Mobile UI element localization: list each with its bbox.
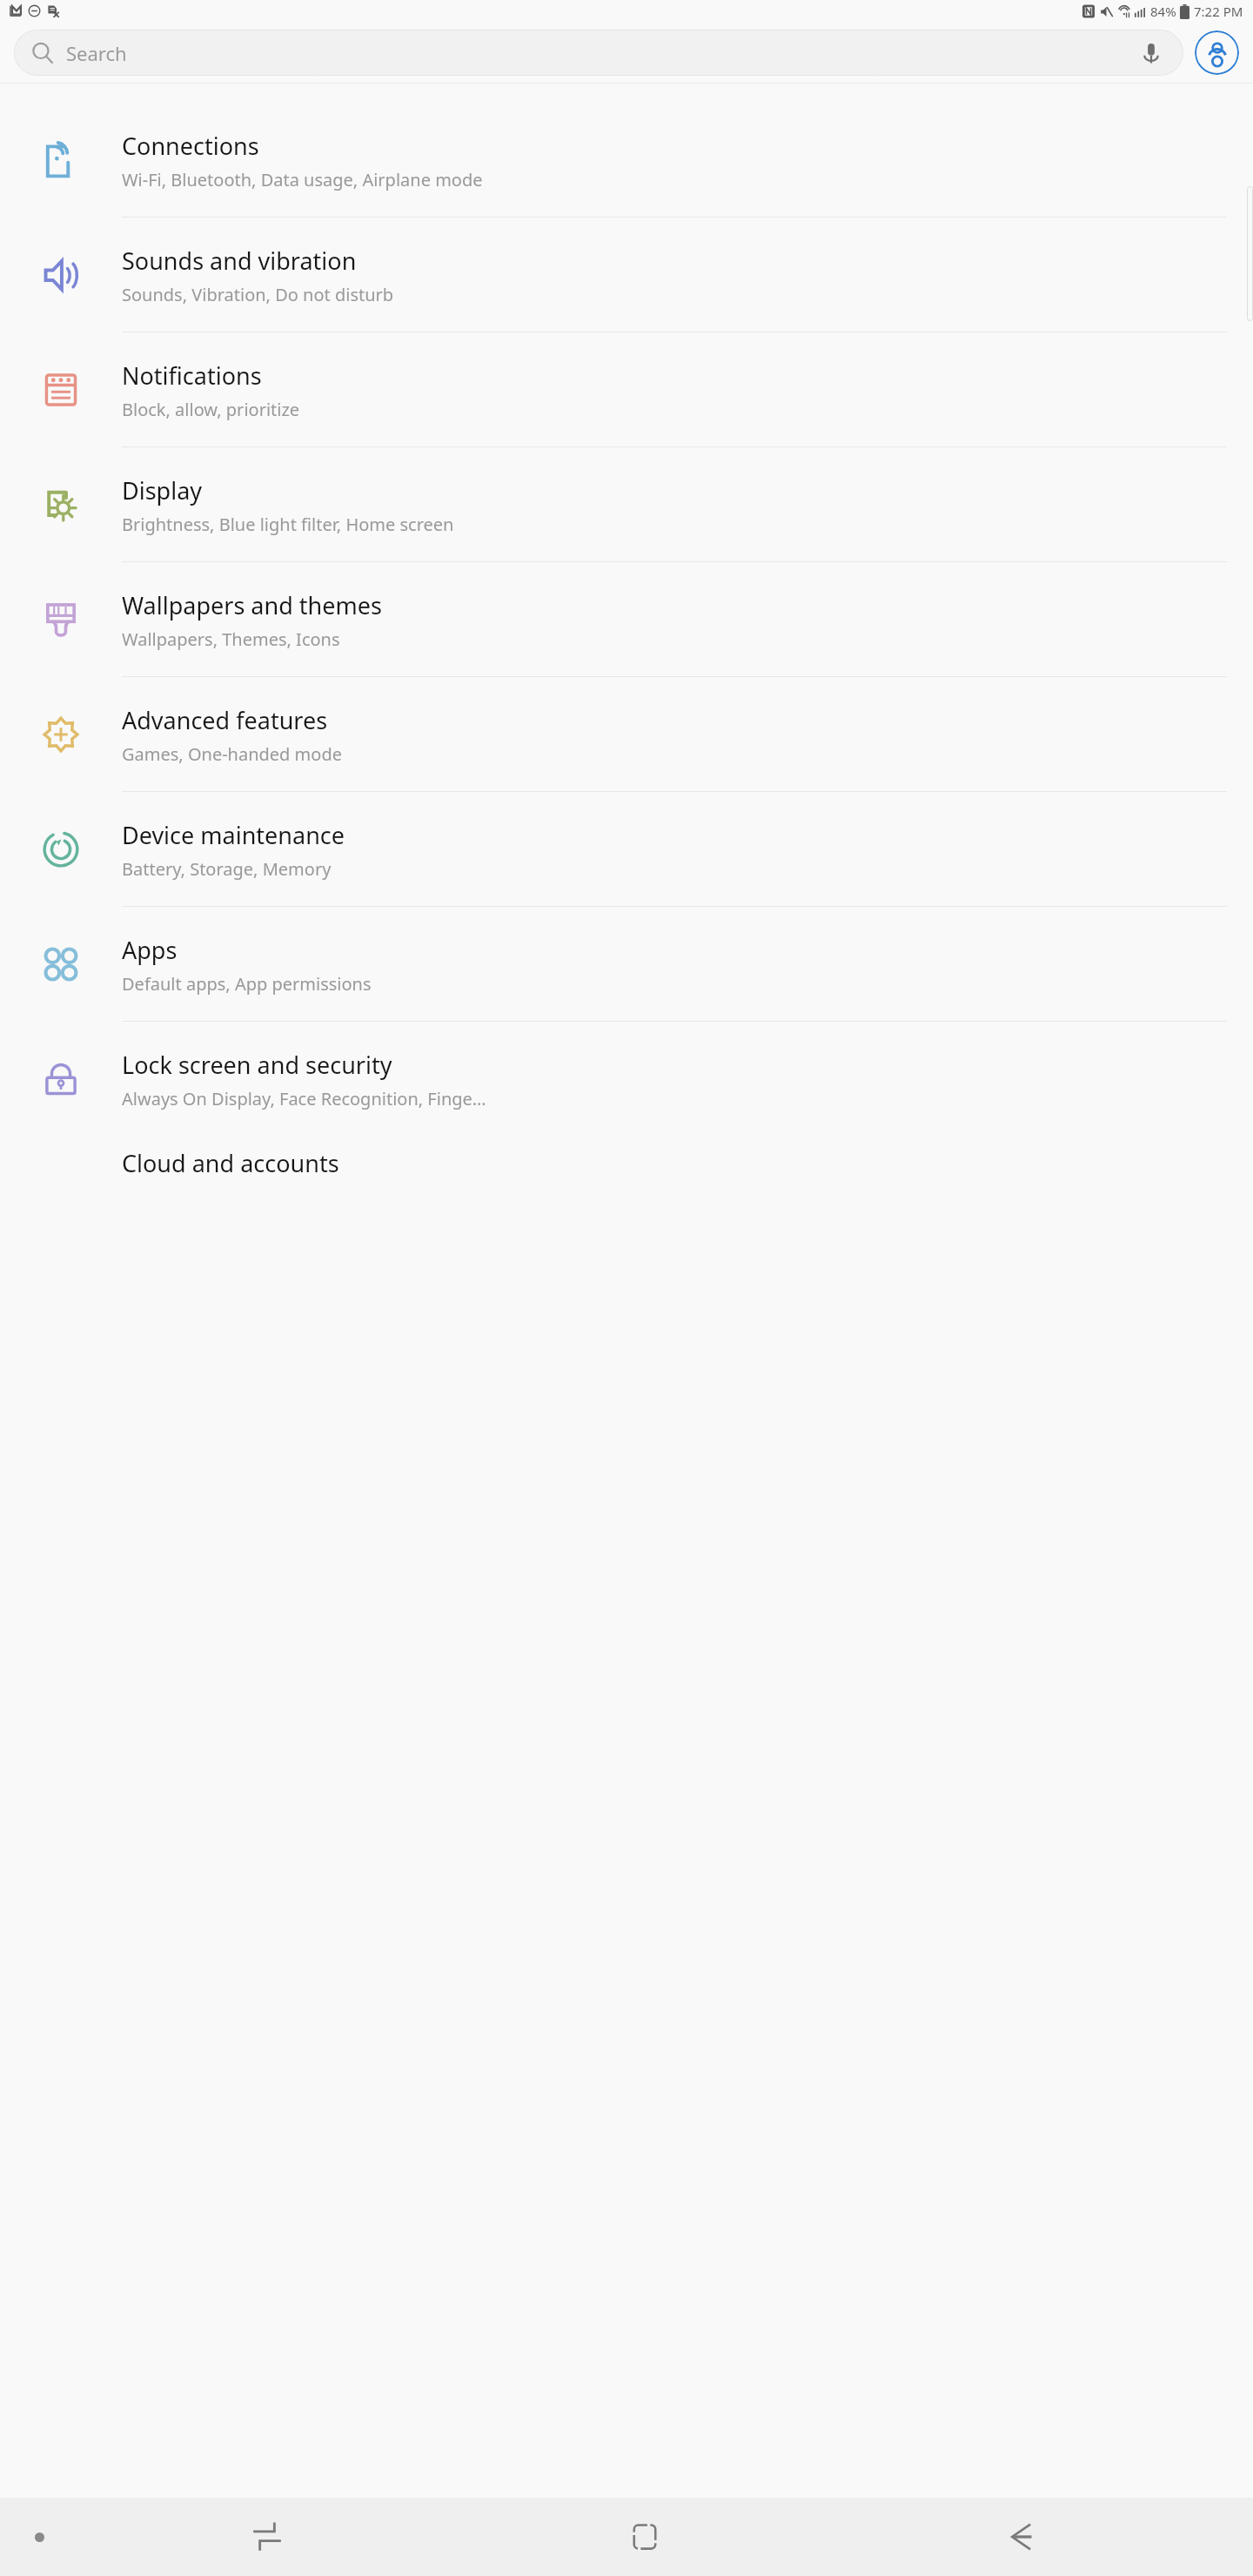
button[interactable]: Lock screen and security [0, 1022, 1253, 1137]
button[interactable]: Search [14, 30, 1183, 76]
staticText: Block, allow, prioritize [122, 398, 300, 421]
button[interactable]: Samsung account [1195, 30, 1239, 75]
staticText: Default apps, App permissions [122, 972, 372, 996]
button[interactable]: Back [833, 2498, 1209, 2576]
button[interactable]: Advanced features [0, 677, 1253, 792]
staticText: Apps [122, 934, 178, 966]
staticText: Connections [122, 130, 259, 162]
button[interactable]: Recents [78, 2498, 456, 2576]
staticText: Brightness, Blue light filter, Home scre… [122, 513, 454, 536]
button[interactable]: Wallpapers and themes [0, 562, 1253, 677]
button[interactable]: Display [0, 447, 1253, 562]
staticText: Advanced features [122, 704, 328, 736]
staticText: Battery, Storage, Memory [122, 857, 332, 881]
staticText: Always On Display, Face Recognition, Fin… [122, 1087, 486, 1110]
staticText: Wallpapers, Themes, Icons [122, 627, 340, 651]
staticText: Sounds and vibration [122, 245, 357, 277]
button[interactable]: Apps [0, 907, 1253, 1022]
staticText: Device maintenance [122, 819, 345, 851]
staticText: Sounds, Vibration, Do not disturb [122, 283, 394, 306]
staticText: Wi-Fi, Bluetooth, Data usage, Airplane m… [122, 168, 483, 191]
staticText: Search [66, 40, 1136, 66]
button[interactable]: Home [456, 2498, 833, 2576]
staticText: Notifications [122, 359, 262, 392]
button[interactable]: Voice search [1136, 38, 1166, 68]
button[interactable]: Sounds and vibration [0, 218, 1253, 332]
staticText: 7:22 PM [1194, 3, 1243, 20]
button[interactable]: Device maintenance [0, 792, 1253, 907]
staticText: Wallpapers and themes [122, 589, 382, 621]
staticText: Cloud and accounts [122, 1147, 339, 1177]
staticText: Display [122, 474, 203, 506]
staticText: 84% [1150, 3, 1176, 20]
button[interactable]: Connections [0, 103, 1253, 218]
staticText: Lock screen and security [122, 1049, 392, 1081]
button[interactable]: Notifications [0, 332, 1253, 447]
staticText: Games, One-handed mode [122, 742, 342, 766]
